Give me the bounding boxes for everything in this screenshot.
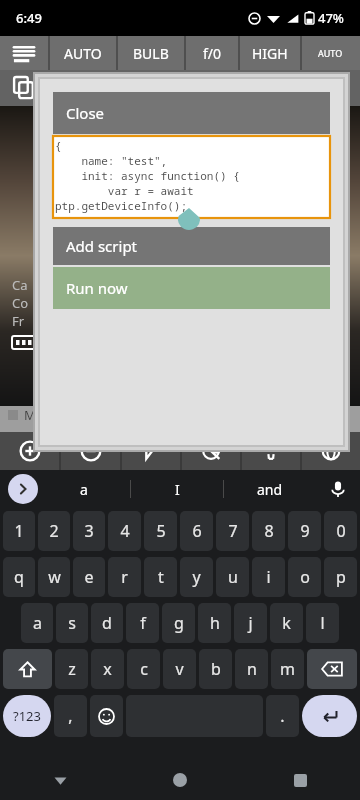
staticText: 4 — [120, 520, 130, 542]
button[interactable]: q — [3, 557, 35, 597]
button[interactable]: h — [198, 603, 231, 643]
button[interactable]: p — [324, 557, 357, 597]
staticText: t — [158, 566, 164, 588]
button[interactable]: b — [199, 649, 232, 689]
button[interactable]: u — [216, 557, 249, 597]
button[interactable]: v — [163, 649, 196, 689]
button[interactable]: 4 — [108, 511, 141, 551]
button[interactable]: 5 — [144, 511, 177, 551]
staticText: Ca — [12, 276, 28, 294]
button[interactable]: Backspace — [307, 649, 357, 689]
button[interactable]: f/0 — [186, 36, 238, 70]
button[interactable]: I — [131, 470, 223, 508]
button[interactable]: Flash — [242, 432, 300, 470]
button[interactable]: Remove — [61, 432, 120, 470]
button[interactable]: Enter — [302, 695, 357, 737]
button[interactable]: Play — [122, 432, 180, 470]
button[interactable]: n — [235, 649, 268, 689]
button[interactable]: x — [91, 649, 124, 689]
button[interactable]: e — [73, 557, 105, 597]
staticText: Co — [12, 294, 29, 312]
button[interactable]: c — [127, 649, 160, 689]
button[interactable]: f — [126, 603, 159, 643]
button[interactable]: Close — [53, 92, 330, 134]
staticText: 9 — [300, 520, 310, 542]
button[interactable]: s — [56, 603, 88, 643]
button[interactable]: a — [38, 470, 130, 508]
button[interactable]: Add — [0, 432, 59, 470]
button[interactable]: Home — [120, 760, 240, 800]
button[interactable]: , — [54, 695, 87, 737]
button[interactable]: i — [252, 557, 285, 597]
button[interactable]: 0 — [324, 511, 357, 551]
button[interactable]: r — [108, 557, 141, 597]
button[interactable]: l — [306, 603, 339, 643]
staticText: q — [14, 566, 24, 588]
staticText: 5 — [156, 520, 166, 542]
button[interactable]: and — [224, 470, 316, 508]
staticText: u — [228, 566, 238, 588]
button[interactable]: ?123 — [3, 695, 51, 737]
staticText: 2 — [49, 520, 59, 542]
staticText: AUTO — [64, 44, 102, 63]
staticText: o — [300, 566, 310, 588]
staticText: Add script — [66, 236, 138, 256]
staticText: I — [175, 480, 180, 499]
staticText: BULB — [133, 44, 169, 63]
button[interactable]: HIGH — [240, 36, 300, 70]
staticText: y — [192, 566, 201, 588]
button[interactable]: AUTO — [50, 36, 116, 70]
button[interactable]: Add script — [53, 227, 330, 265]
staticText: x — [103, 658, 112, 680]
button[interactable]: 6 — [180, 511, 213, 551]
button[interactable]: t — [144, 557, 177, 597]
button[interactable]: k — [270, 603, 303, 643]
button[interactable]: Emoji — [90, 695, 123, 737]
button[interactable]: 8 — [252, 511, 285, 551]
button[interactable]: 7 — [216, 511, 249, 551]
staticText: 6:49 — [16, 9, 42, 27]
button[interactable]: { — [53, 136, 330, 218]
button[interactable]: a — [21, 603, 53, 643]
staticText: var r = await — [55, 183, 194, 198]
button[interactable]: Camera off — [182, 432, 240, 470]
button[interactable]: g — [162, 603, 195, 643]
staticText: e — [84, 566, 94, 588]
button[interactable]: Run now — [53, 267, 330, 309]
staticText: g — [174, 612, 184, 634]
staticText: a — [33, 612, 42, 634]
staticText: 47% — [318, 9, 344, 27]
staticText: l — [320, 612, 325, 634]
button[interactable]: Shift — [3, 649, 52, 689]
button[interactable]: Back — [0, 760, 120, 800]
button[interactable]: 9 — [288, 511, 321, 551]
staticText: 6 — [192, 520, 202, 542]
button[interactable]: o — [288, 557, 321, 597]
button[interactable]: Voice input — [316, 470, 360, 508]
staticText: h — [210, 612, 220, 634]
button[interactable]: w — [38, 557, 70, 597]
button[interactable]: j — [234, 603, 267, 643]
button[interactable]: More suggestions — [8, 474, 38, 504]
staticText: f — [140, 612, 146, 634]
staticText: m — [280, 658, 295, 680]
button[interactable]: d — [91, 603, 123, 643]
button[interactable]: 3 — [73, 511, 105, 551]
button[interactable]: . — [266, 695, 299, 737]
button[interactable]: m — [271, 649, 304, 689]
staticText: 6:49 — [16, 9, 42, 27]
button[interactable]: Settings — [302, 432, 360, 470]
button[interactable]: BULB — [118, 36, 184, 70]
staticText: 0 — [336, 520, 346, 542]
button[interactable] — [0, 36, 48, 70]
button[interactable]: y — [180, 557, 213, 597]
button[interactable]: 2 — [38, 511, 70, 551]
button[interactable]: Recents — [240, 760, 360, 800]
button[interactable]: z — [55, 649, 88, 689]
button[interactable]: AUTO — [302, 36, 358, 70]
staticText: 3 — [84, 520, 94, 542]
staticText: and — [257, 480, 283, 499]
button[interactable]: 1 — [3, 511, 35, 551]
staticText: . — [280, 705, 285, 727]
